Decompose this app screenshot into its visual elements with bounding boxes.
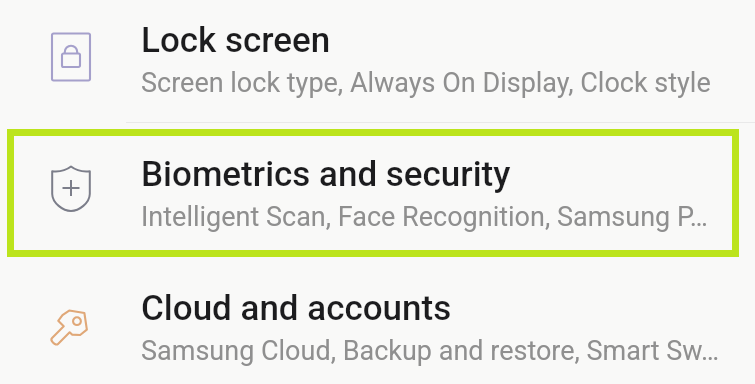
other: Lock screen xyxy=(0,0,141,126)
staticText: Intelligent Scan, Face Recognition, Sams… xyxy=(141,201,708,233)
staticText: Cloud and accounts xyxy=(141,288,452,329)
staticText: Samsung Cloud, Backup and restore, Smart… xyxy=(141,335,720,367)
button[interactable]: Biometrics and security xyxy=(0,126,755,260)
staticText: Screen lock type, Always On Display, Clo… xyxy=(141,67,711,99)
other: Biometrics and security xyxy=(0,126,141,260)
button[interactable]: Cloud and accounts xyxy=(0,260,755,384)
staticText: Lock screen xyxy=(141,20,331,61)
staticText: Biometrics and security xyxy=(141,154,511,195)
other: Cloud and accounts xyxy=(0,260,141,384)
button[interactable]: Lock screen xyxy=(0,0,755,126)
